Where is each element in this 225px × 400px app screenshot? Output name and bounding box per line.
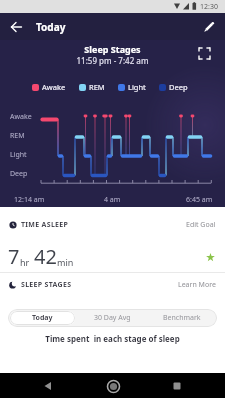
staticText: Today (32, 313, 53, 323)
staticText: Awake (42, 82, 66, 92)
staticText: Deep (169, 82, 188, 92)
staticText: Deep (10, 169, 28, 179)
button[interactable] (199, 18, 217, 36)
staticText: 30 Day Avg (94, 313, 131, 323)
button[interactable]: TIME ASLEEP (9, 219, 216, 231)
staticText: Benchmark (163, 313, 201, 323)
button[interactable]: Today (10, 311, 75, 325)
button[interactable] (103, 376, 123, 396)
staticText: REM (89, 82, 105, 92)
button[interactable] (167, 376, 187, 396)
staticText: TIME ASLEEP (21, 220, 69, 230)
button[interactable]: SLEEP STAGES (9, 279, 216, 291)
button[interactable]: 30 Day Avg (77, 309, 147, 327)
staticText: Learn More (178, 280, 216, 290)
button[interactable] (38, 376, 58, 396)
staticText: SLEEP STAGES (21, 280, 72, 290)
button[interactable] (6, 17, 26, 37)
staticText: 42 (34, 243, 57, 270)
staticText: hr (20, 256, 30, 268)
staticText: Edit Goal (186, 220, 216, 230)
staticText: min (57, 256, 74, 268)
staticText: 7 (8, 243, 20, 270)
staticText: REM (10, 131, 25, 141)
staticText: 6:45 am (186, 195, 213, 205)
staticText: 12:14 am (14, 195, 45, 205)
button[interactable] (198, 47, 213, 62)
button[interactable]: Benchmark (147, 309, 217, 327)
staticText: Light (10, 150, 27, 160)
staticText: Light (128, 82, 146, 92)
staticText: Awake (10, 112, 32, 122)
staticText: 4 am (104, 195, 121, 205)
staticText: Sleep Stages (0, 43, 225, 55)
staticText: Today (36, 20, 66, 34)
staticText: 11:59 pm - 7:42 am (0, 55, 225, 66)
staticText: Time spent in each stage of sleep (0, 333, 225, 344)
staticText: 12:30 (200, 2, 218, 12)
